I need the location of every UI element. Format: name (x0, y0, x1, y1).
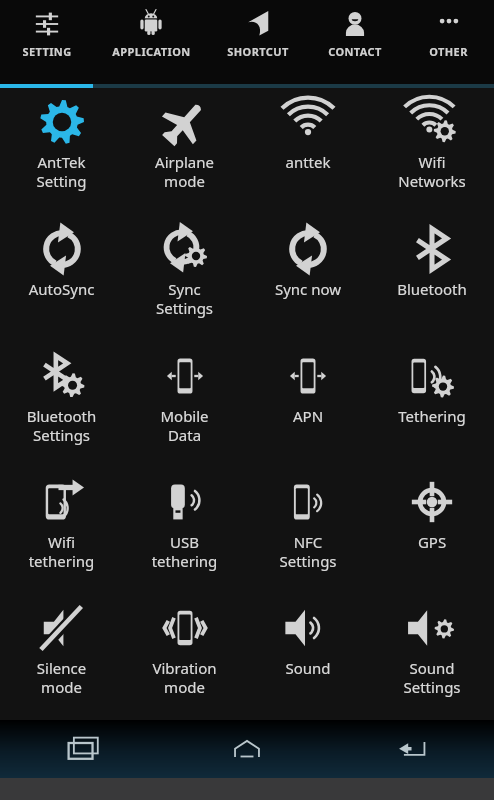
other: Wifi tethering (40, 480, 84, 524)
button[interactable]: Bluetooth (370, 215, 494, 342)
staticText: Sound (246, 658, 370, 678)
other: Tethering (410, 354, 454, 398)
staticText: Sync now (246, 279, 370, 299)
button[interactable]: Wifi Networks (370, 88, 494, 215)
button[interactable]: NFC Settings (246, 468, 370, 594)
other: Vibration mode (163, 606, 207, 650)
button[interactable]: AntTek Setting (0, 88, 123, 215)
staticText: AutoSync (0, 279, 123, 299)
button[interactable]: Recents (0, 720, 164, 778)
staticText: SETTING (22, 44, 72, 59)
staticText: Silence mode (0, 658, 123, 697)
staticText: Sync Settings (123, 279, 246, 318)
staticText: Tethering (370, 406, 494, 426)
staticText: APPLICATION (112, 44, 191, 59)
other: APN (286, 354, 330, 398)
button[interactable]: GPS (370, 468, 494, 594)
button[interactable]: Mobile Data (123, 342, 246, 468)
button[interactable]: SHORTCUT (209, 0, 307, 88)
other: Silence mode (40, 606, 84, 650)
other: NFC Settings (286, 480, 330, 524)
other: Sync now (286, 227, 330, 271)
other: USB tethering (163, 480, 207, 524)
staticText: Bluetooth Settings (0, 406, 123, 445)
other: Mobile Data (163, 354, 207, 398)
staticText: USB tethering (123, 532, 246, 571)
button[interactable]: anttek (246, 88, 370, 215)
button[interactable]: Sound (246, 594, 370, 720)
staticText: Mobile Data (123, 406, 246, 445)
staticText: Airplane mode (123, 152, 246, 191)
other: Airplane mode (163, 100, 207, 144)
button[interactable]: AutoSync (0, 215, 123, 342)
button[interactable]: APN (246, 342, 370, 468)
button[interactable]: Vibration mode (123, 594, 246, 720)
staticText: NFC Settings (246, 532, 370, 571)
button[interactable]: USB tethering (123, 468, 246, 594)
button[interactable]: CONTACT (307, 0, 403, 88)
staticText: Sound Settings (370, 658, 494, 697)
staticText: GPS (370, 532, 494, 552)
staticText: Wifi tethering (0, 532, 123, 571)
button[interactable]: Airplane mode (123, 88, 246, 215)
other: Bluetooth Settings (40, 354, 84, 398)
button[interactable]: Bluetooth Settings (0, 342, 123, 468)
other: anttek (286, 100, 330, 144)
other: GPS (410, 480, 454, 524)
button[interactable]: OTHER (403, 0, 494, 88)
staticText: Bluetooth (370, 279, 494, 299)
button[interactable]: Silence mode (0, 594, 123, 720)
staticText: OTHER (429, 44, 468, 59)
button[interactable]: Sync now (246, 215, 370, 342)
other: Sync Settings (163, 227, 207, 271)
other: AntTek Setting (40, 100, 84, 144)
button[interactable]: APPLICATION (93, 0, 209, 88)
staticText: AntTek Setting (0, 152, 123, 191)
button[interactable]: Back (329, 720, 494, 778)
staticText: anttek (246, 152, 370, 172)
other: Sound (286, 606, 330, 650)
button[interactable]: Tethering (370, 342, 494, 468)
other: Wifi Networks (410, 100, 454, 144)
button[interactable]: SETTING (0, 0, 93, 88)
button[interactable]: Wifi tethering (0, 468, 123, 594)
other: AutoSync (40, 227, 84, 271)
button[interactable]: Sound Settings (370, 594, 494, 720)
staticText: Wifi Networks (370, 152, 494, 191)
staticText: SHORTCUT (227, 44, 289, 59)
staticText: APN (246, 406, 370, 426)
button[interactable]: Home (164, 720, 329, 778)
staticText: CONTACT (328, 44, 382, 59)
other: Sound Settings (410, 606, 454, 650)
button[interactable]: Sync Settings (123, 215, 246, 342)
staticText: Vibration mode (123, 658, 246, 697)
other: Bluetooth (410, 227, 454, 271)
